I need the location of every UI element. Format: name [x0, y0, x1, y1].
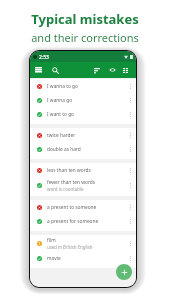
button[interactable]: fewer than ten words [30, 177, 136, 193]
button[interactable]: a present to someone [30, 200, 136, 214]
button[interactable]: film [30, 235, 136, 251]
button[interactable]: double as hard [30, 142, 136, 156]
staticText: I wanna go [47, 97, 73, 104]
staticText: word is countable [47, 186, 84, 192]
staticText: and their corrections [31, 30, 139, 45]
button[interactable]: I wanna to go [30, 79, 136, 93]
button[interactable]: Filter [91, 64, 103, 76]
staticText: used in British English [47, 244, 93, 250]
staticText: fewer than ten words [47, 179, 96, 186]
staticText: I wanna to go [47, 83, 78, 90]
staticText: less than ten words [47, 167, 91, 174]
staticText: twice harder [47, 132, 76, 139]
button[interactable]: Search [49, 64, 61, 76]
button[interactable]: Menu [32, 64, 44, 76]
button[interactable]: More options [124, 93, 136, 107]
button[interactable]: Show corrections [106, 64, 118, 76]
staticText: a present for someone [47, 218, 99, 225]
staticText: 2:53 [39, 54, 49, 61]
button[interactable]: I wanna go [30, 93, 136, 107]
button[interactable]: I want to go [30, 107, 136, 121]
button[interactable]: More options [124, 200, 136, 214]
button[interactable]: less than ten words [30, 163, 136, 177]
button[interactable]: More options [124, 107, 136, 121]
staticText: Typical mistakes [31, 10, 139, 28]
button[interactable]: More options [124, 142, 136, 156]
button[interactable]: movie [30, 251, 136, 265]
button[interactable]: twice harder [30, 128, 136, 142]
staticText: movie [47, 255, 61, 262]
button[interactable]: More options [124, 79, 136, 93]
button[interactable]: More options [124, 163, 136, 177]
button[interactable]: More options [124, 251, 136, 265]
staticText: double as hard [47, 146, 81, 153]
button[interactable]: Grid view [119, 64, 131, 76]
button[interactable]: a present for someone [30, 214, 136, 228]
button[interactable]: More options [124, 214, 136, 228]
staticText: I want to go [47, 111, 75, 118]
button[interactable]: Add [116, 264, 132, 280]
button[interactable]: More options [124, 236, 136, 250]
button[interactable]: More options [124, 178, 136, 192]
staticText: film [47, 237, 56, 244]
button[interactable]: More options [124, 128, 136, 142]
staticText: a present to someone [47, 204, 97, 211]
